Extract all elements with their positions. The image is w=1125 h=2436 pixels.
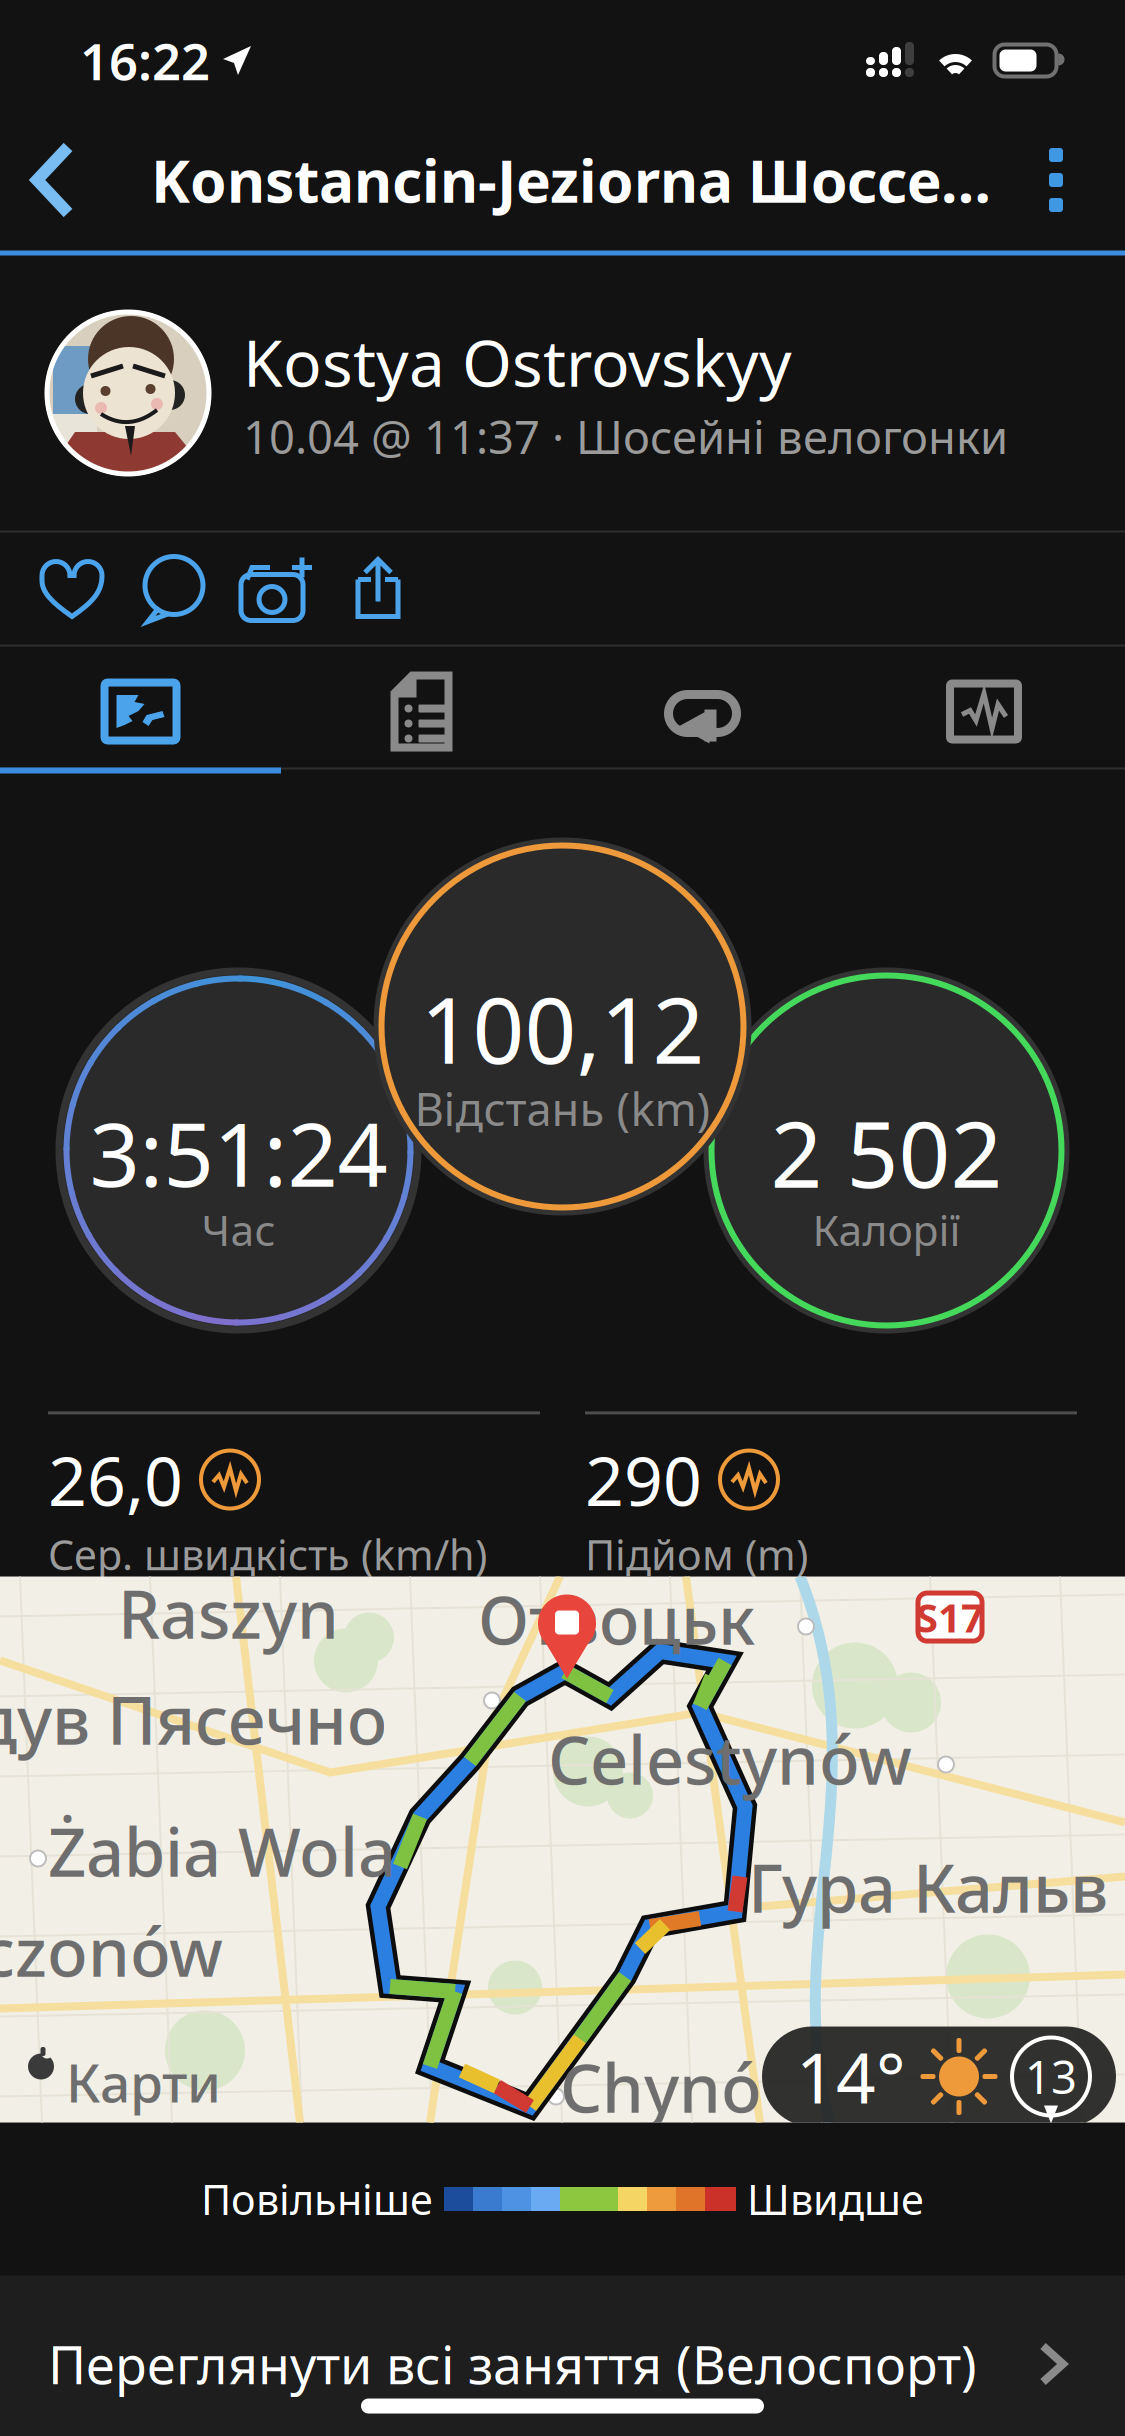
button[interactable]: More options [1019,114,1125,246]
button[interactable]: Details [281,649,562,773]
staticText: 13 [1025,2046,1077,2107]
staticText: Сер. швидкість (km/h) [48,1527,487,1582]
staticText: Kostya Ostrovskyy [243,319,792,404]
button[interactable]: Athlete avatar [45,310,211,476]
staticText: Переглянути всі заняття (Велоспорт) [48,2329,977,2399]
staticText: Celestynów [548,1714,912,1803]
staticText: 10.04 @ 11:37 · Шосейні велогонки [243,406,1008,467]
button[interactable]: Share [327,532,429,644]
button[interactable]: Analysis [843,649,1125,773]
staticText: Отвоцьк [478,1574,755,1663]
staticText: czonów [0,1906,223,1995]
staticText: 3:51:24 [89,1094,387,1211]
staticText: Калорії [812,1201,960,1258]
staticText: 100,12 [420,968,704,1089]
staticText: Гура Кальв [748,1842,1108,1931]
staticText: S17 [916,1590,984,1644]
staticText: Час [201,1201,275,1258]
button[interactable]: Back [0,110,151,250]
staticText: Відстань (km) [414,1078,710,1139]
button[interactable]: Map [0,649,281,773]
staticText: Повільніше [201,2172,433,2226]
button[interactable]: Laps [562,649,843,773]
staticText: Карти [66,2046,221,2117]
staticText: Підйом (m) [585,1527,808,1582]
staticText: Żabia Wola [48,1806,396,1895]
button[interactable]: Переглянути всі заняття (Велоспорт) [0,2275,1125,2436]
staticText: Raszyn [118,1568,339,1657]
button[interactable]: Like [21,532,123,644]
staticText: Швидше [747,2172,924,2226]
staticText: 26,0 [48,1434,183,1525]
staticText: дув Пясечно [0,1674,387,1763]
button[interactable]: Comment [123,532,225,644]
staticText: Chynó [560,2042,762,2131]
staticText: 290 [585,1434,702,1525]
button[interactable]: Add photo [225,532,327,644]
staticText: 16:22 [80,27,210,94]
staticText: Konstancin-Jeziorna Шоссейны… [151,141,1011,219]
staticText: 2 502 [770,1092,1002,1213]
staticText: 14° [796,2030,906,2123]
